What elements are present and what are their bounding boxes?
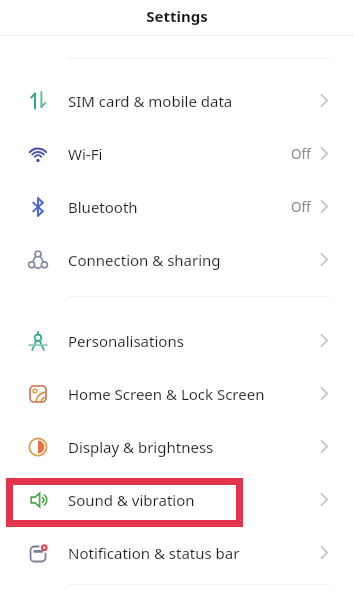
staticText: Connection & sharing [68, 250, 221, 270]
button[interactable]: Notification & status bar [0, 526, 354, 579]
staticText: Sound & vibration [68, 490, 195, 510]
staticText: Off [291, 198, 311, 216]
button[interactable]: Personalisations [0, 314, 354, 367]
staticText: Home Screen & Lock Screen [68, 384, 265, 404]
staticText: Notification & status bar [68, 543, 240, 563]
button[interactable]: Display & brightness [0, 420, 354, 473]
staticText: Personalisations [68, 331, 184, 351]
button[interactable]: Home Screen & Lock Screen [0, 367, 354, 420]
button[interactable]: Bluetooth [0, 180, 354, 233]
staticText: Wi-Fi [68, 144, 103, 164]
staticText: SIM card & mobile data [68, 91, 233, 111]
button[interactable]: Wi-Fi [0, 127, 354, 180]
button[interactable]: Sound & vibration [0, 473, 354, 526]
staticText: Settings [146, 6, 208, 26]
button[interactable]: Connection & sharing [0, 233, 354, 286]
button[interactable]: SIM card & mobile data [0, 74, 354, 127]
staticText: Off [291, 145, 311, 163]
staticText: Display & brightness [68, 437, 214, 457]
staticText: Bluetooth [68, 197, 138, 217]
